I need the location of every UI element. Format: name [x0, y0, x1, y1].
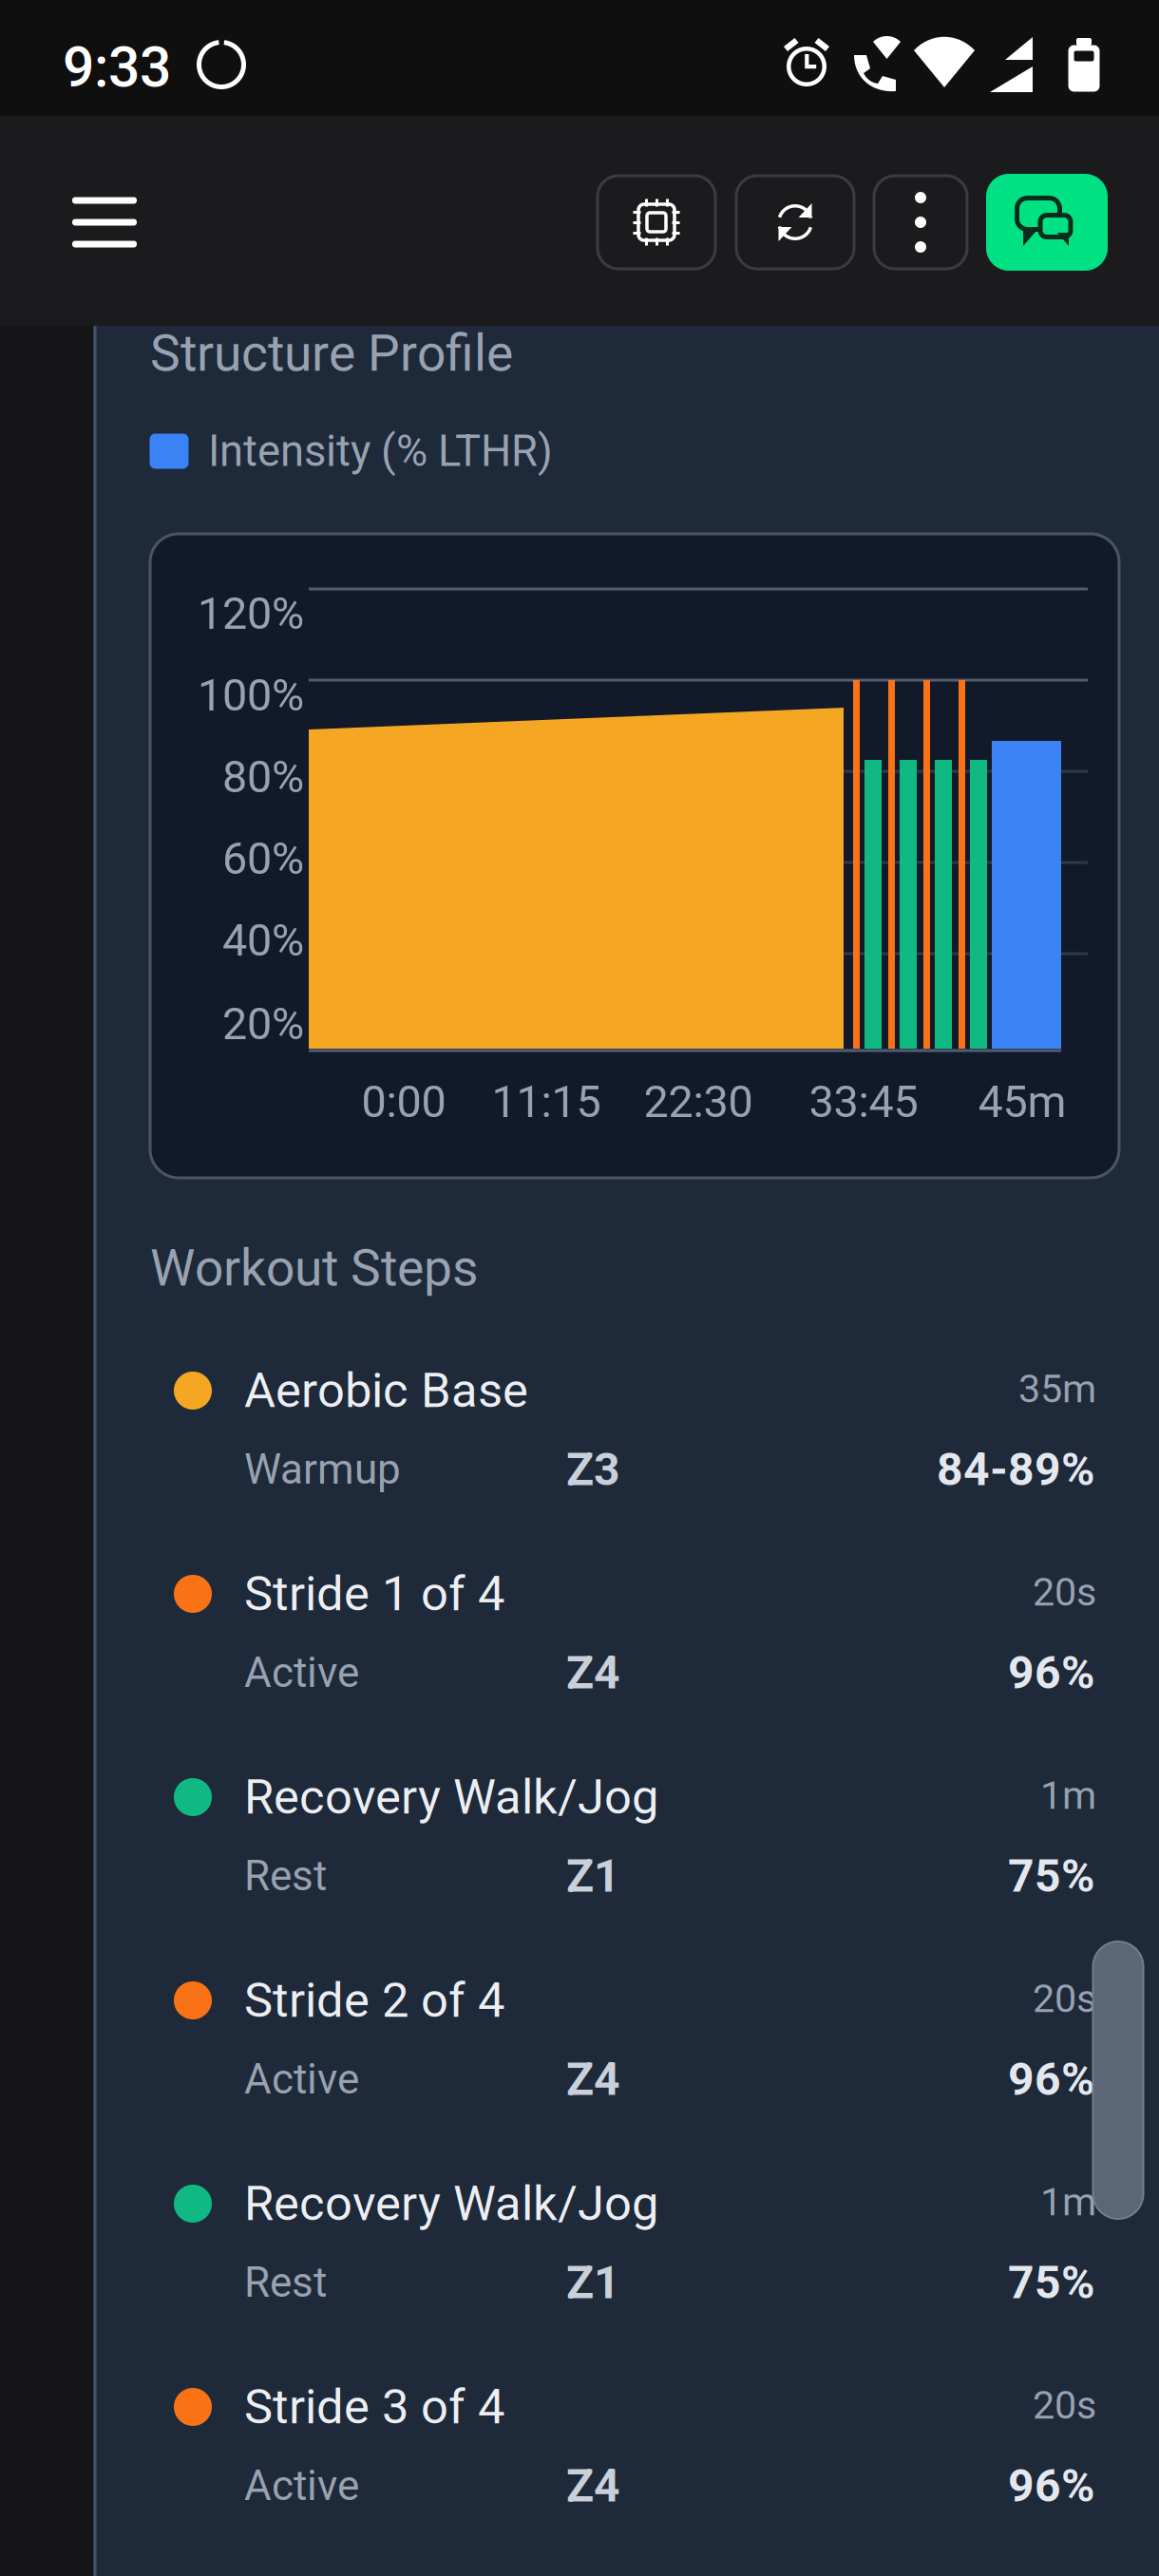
staticText: 60%: [222, 833, 304, 885]
staticText: 84-89%: [937, 1443, 1094, 1496]
staticText: Aerobic Base: [244, 1362, 528, 1419]
button[interactable]: Stride 2 of 4: [175, 1960, 1093, 2164]
button[interactable]: Sync: [736, 176, 854, 269]
staticText: 1m: [1040, 1772, 1096, 1818]
staticText: Z4: [566, 1646, 620, 1699]
button[interactable]: Stride 1 of 4: [175, 1554, 1093, 1757]
staticText: Active: [244, 1648, 359, 1697]
staticText: 75%: [1008, 2256, 1094, 2309]
button[interactable]: Chat: [986, 174, 1108, 271]
staticText: 11:15: [492, 1076, 601, 1128]
staticText: Active: [244, 2055, 359, 2104]
button[interactable]: Recovery Walk/Jog: [175, 1757, 1093, 1960]
staticText: 45m: [978, 1076, 1066, 1128]
staticText: 22:30: [644, 1076, 753, 1128]
staticText: Warmup: [244, 1445, 401, 1494]
staticText: 35m: [1018, 1366, 1096, 1412]
staticText: 80%: [222, 751, 304, 803]
button[interactable]: Device: [598, 176, 715, 269]
button[interactable]: Recovery Walk/Jog: [175, 2164, 1093, 2367]
button[interactable]: More options: [874, 176, 967, 269]
staticText: Stride 2 of 4: [244, 1972, 504, 2029]
staticText: 33:45: [809, 1076, 918, 1128]
button[interactable]: Stride 3 of 4: [175, 2367, 1093, 2570]
staticText: Rest: [244, 2258, 327, 2307]
staticText: Active: [244, 2461, 359, 2510]
staticText: Intensity (% LTHR): [208, 426, 553, 476]
staticText: Z1: [566, 1849, 620, 1903]
staticText: 40%: [222, 914, 304, 966]
staticText: 120%: [198, 588, 304, 640]
staticText: Stride 1 of 4: [244, 1566, 504, 1622]
button[interactable]: Menu: [49, 167, 160, 277]
staticText: Recovery Walk/Jog: [244, 1769, 658, 1825]
staticText: Recovery Walk/Jog: [244, 2175, 658, 2232]
staticText: Rest: [244, 1851, 327, 1900]
staticText: Z3: [566, 1443, 620, 1496]
staticText: Stride 3 of 4: [244, 2379, 504, 2435]
staticText: 9:33: [63, 35, 171, 100]
staticText: 1m: [1040, 2179, 1096, 2225]
staticText: 96%: [1008, 2459, 1094, 2512]
staticText: Z4: [566, 2459, 620, 2512]
staticText: Z4: [566, 2053, 620, 2106]
staticText: 20%: [222, 998, 304, 1050]
staticText: 20s: [1033, 2382, 1096, 2428]
staticText: 20s: [1033, 1569, 1096, 1615]
staticText: 75%: [1008, 1849, 1094, 1903]
staticText: 20s: [1033, 1976, 1096, 2021]
staticText: 96%: [1008, 1646, 1094, 1699]
staticText: 100%: [198, 669, 304, 721]
button[interactable]: Aerobic Base: [175, 1351, 1093, 1554]
staticText: Structure Profile: [150, 324, 513, 383]
staticText: 96%: [1008, 2053, 1094, 2106]
staticText: Workout Steps: [150, 1238, 479, 1298]
staticText: 0:00: [361, 1076, 446, 1128]
staticText: Z1: [566, 2256, 620, 2309]
